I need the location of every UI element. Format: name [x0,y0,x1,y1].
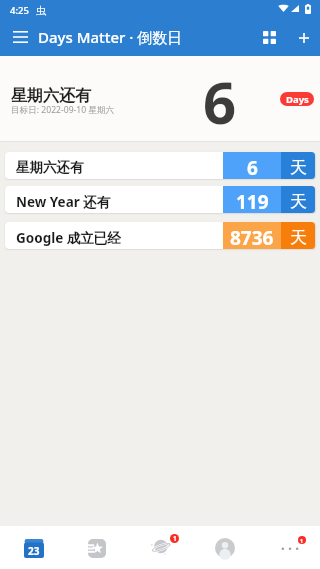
button[interactable]: Google 成立已经 [5,222,315,249]
button[interactable]: More [256,526,320,569]
button[interactable]: Collections [64,526,128,569]
staticText: 天 [290,191,307,212]
button[interactable]: Grid view [254,23,285,54]
staticText: 天 [290,157,307,178]
staticText: 1 [173,534,177,543]
staticText: 119 [236,189,269,213]
staticText: 星期六还有 [11,86,91,106]
button[interactable]: Add [288,23,319,54]
staticText: 6 [203,62,237,141]
staticText: 星期六还有 [16,159,84,176]
staticText: 4:25 [10,4,29,17]
staticText: 虫 [36,4,46,17]
staticText: 目标日: 2022-09-10 星期六 [11,104,115,116]
button[interactable]: 星期六还有 [5,152,315,179]
staticText: 6 [247,155,258,179]
staticText: 1 [300,537,304,544]
staticText: Google 成立已经 [16,229,121,247]
button[interactable]: Menu [6,22,35,51]
staticText: 23 [28,544,40,558]
staticText: Days Matter · 倒数日 [38,27,183,47]
button[interactable]: Countdown [0,526,64,569]
button[interactable]: New Year 还有 [5,186,315,213]
button[interactable]: Discover [128,526,192,569]
button[interactable]: 星期六还有 [0,56,320,142]
button[interactable]: Me [192,526,256,569]
staticText: New Year 还有 [16,193,111,211]
staticText: 天 [290,227,307,248]
staticText: 8736 [230,225,274,249]
staticText: Days [286,93,309,106]
